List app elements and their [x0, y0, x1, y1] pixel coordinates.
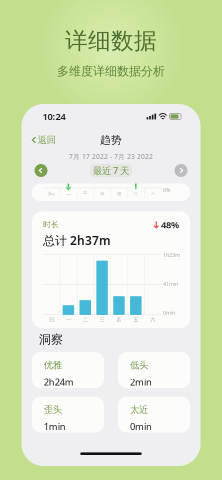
- button[interactable]: 太近: [118, 396, 190, 432]
- staticText: 趋势: [100, 133, 122, 146]
- staticText: 二: [83, 316, 88, 323]
- staticText: 多维度详细数据分析: [57, 64, 165, 78]
- button[interactable]: 返回: [21, 131, 62, 149]
- staticText: 低头: [130, 359, 148, 371]
- staticText: ≡: [100, 190, 104, 197]
- staticText: 时长: [43, 220, 59, 230]
- staticText: 0min: [163, 309, 175, 316]
- staticText: 详细数据: [65, 27, 157, 55]
- staticText: 最近 7 天: [93, 164, 129, 177]
- staticText: 歪头: [44, 404, 62, 415]
- staticText: 41min: [163, 280, 178, 287]
- staticText: 7月 17 2022 - 7月 23 2022: [69, 152, 153, 161]
- button[interactable]: 歪头: [32, 396, 104, 432]
- staticText: 总计 2h37m: [43, 232, 111, 248]
- staticText: 2h24m: [44, 376, 74, 388]
- staticText: 48%: [161, 218, 179, 231]
- button[interactable]: 最近 7 天: [90, 164, 132, 177]
- staticText: ⛌: [134, 191, 138, 196]
- button[interactable]: 优雅: [32, 352, 104, 388]
- staticText: 0%: [163, 186, 170, 193]
- staticText: 优雅: [44, 359, 62, 371]
- button[interactable]: 下一周: [171, 162, 190, 179]
- staticText: 四: [116, 316, 121, 323]
- staticText: —: [66, 190, 71, 197]
- staticText: 太近: [130, 404, 148, 415]
- staticText: 一: [66, 316, 71, 323]
- staticText: 10:24: [42, 110, 65, 123]
- staticText: 洞察: [39, 332, 63, 347]
- staticText: ⌂: [151, 190, 154, 197]
- staticText: 三: [100, 316, 105, 323]
- staticText: 返回: [38, 134, 56, 146]
- staticText: 1h23m: [163, 251, 180, 258]
- staticText: 0min: [130, 420, 152, 433]
- staticText: 🛏: [48, 190, 55, 197]
- staticText: ☰: [83, 190, 88, 197]
- staticText: 五: [133, 316, 138, 323]
- staticText: 1min: [44, 420, 66, 433]
- staticText: ⊞: [117, 190, 121, 197]
- staticText: 六: [150, 316, 155, 323]
- button[interactable]: 上一周: [31, 162, 50, 179]
- staticText: 2min: [130, 376, 152, 388]
- button[interactable]: 低头: [118, 352, 190, 388]
- staticText: 日: [49, 316, 54, 323]
